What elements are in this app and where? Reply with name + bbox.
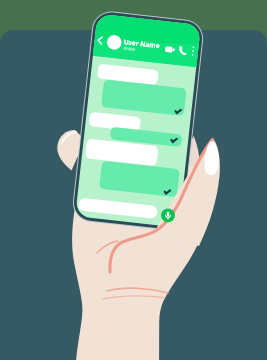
button[interactable]: Hand holding phone with chat app: [0, 0, 267, 360]
